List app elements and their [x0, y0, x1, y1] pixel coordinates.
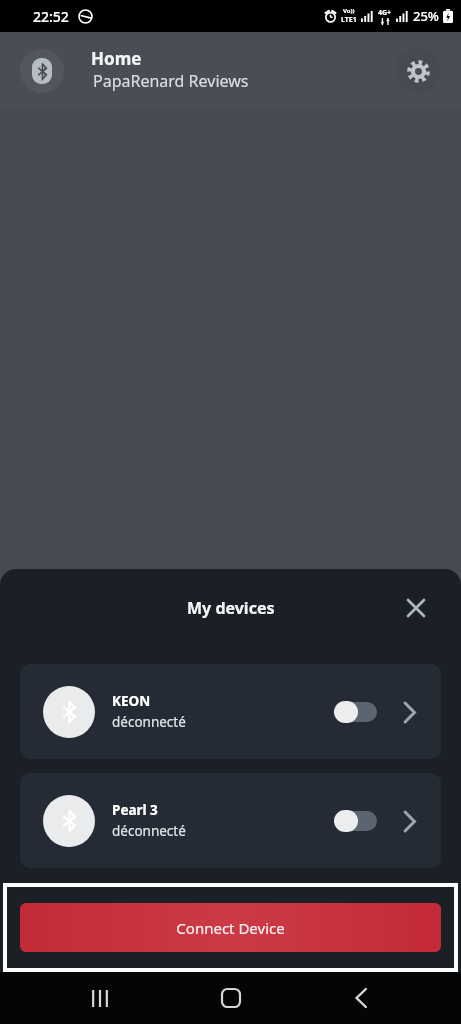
staticText: 4G+	[378, 8, 392, 18]
staticText: Vo))	[343, 7, 355, 15]
staticText: Pearl 3	[112, 801, 158, 819]
button[interactable]: KEON	[20, 664, 441, 759]
staticText: LTE1	[341, 15, 357, 25]
button[interactable]: Home	[207, 974, 255, 1022]
button[interactable]: Open Pearl 3	[394, 806, 424, 836]
button[interactable]: Bluetooth	[20, 49, 64, 93]
staticText: déconnecté	[112, 713, 186, 731]
button[interactable]: Close	[398, 590, 434, 626]
staticText: Connect Device	[176, 918, 285, 938]
staticText: Home	[91, 47, 142, 70]
staticText: 25%	[413, 7, 439, 25]
button[interactable]: Open KEON	[394, 697, 424, 727]
button[interactable]: Back	[337, 974, 385, 1022]
button[interactable]: Toggle KEON	[334, 701, 376, 723]
button[interactable]: Connect Device	[20, 903, 441, 952]
staticText: PapaRenard Reviews	[93, 70, 249, 92]
staticText: 22:52	[33, 7, 69, 26]
button[interactable]: Pearl 3	[20, 773, 441, 868]
staticText: déconnecté	[112, 822, 186, 840]
button[interactable]: Settings	[395, 48, 441, 94]
button[interactable]: Recents	[76, 974, 124, 1022]
button[interactable]: Toggle Pearl 3	[334, 810, 376, 832]
staticText: KEON	[112, 692, 151, 710]
staticText: My devices	[187, 597, 275, 619]
